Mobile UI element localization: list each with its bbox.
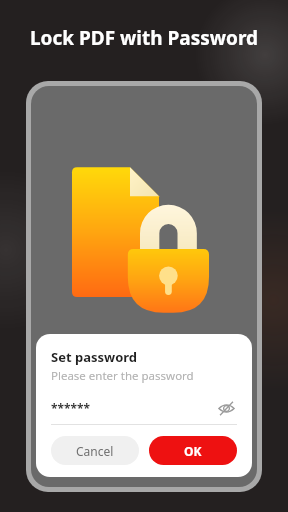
staticText: Please enter the password: [51, 368, 194, 384]
staticText: Lock PDF with Password: [0, 25, 288, 51]
staticText: Cancel: [76, 443, 114, 459]
button[interactable]: OK: [149, 436, 237, 465]
button[interactable]: Cancel: [51, 436, 139, 465]
button[interactable]: Show password: [215, 397, 237, 419]
staticText: OK: [184, 443, 202, 459]
staticText: Set password: [51, 348, 138, 366]
staticText: ******: [51, 400, 215, 416]
